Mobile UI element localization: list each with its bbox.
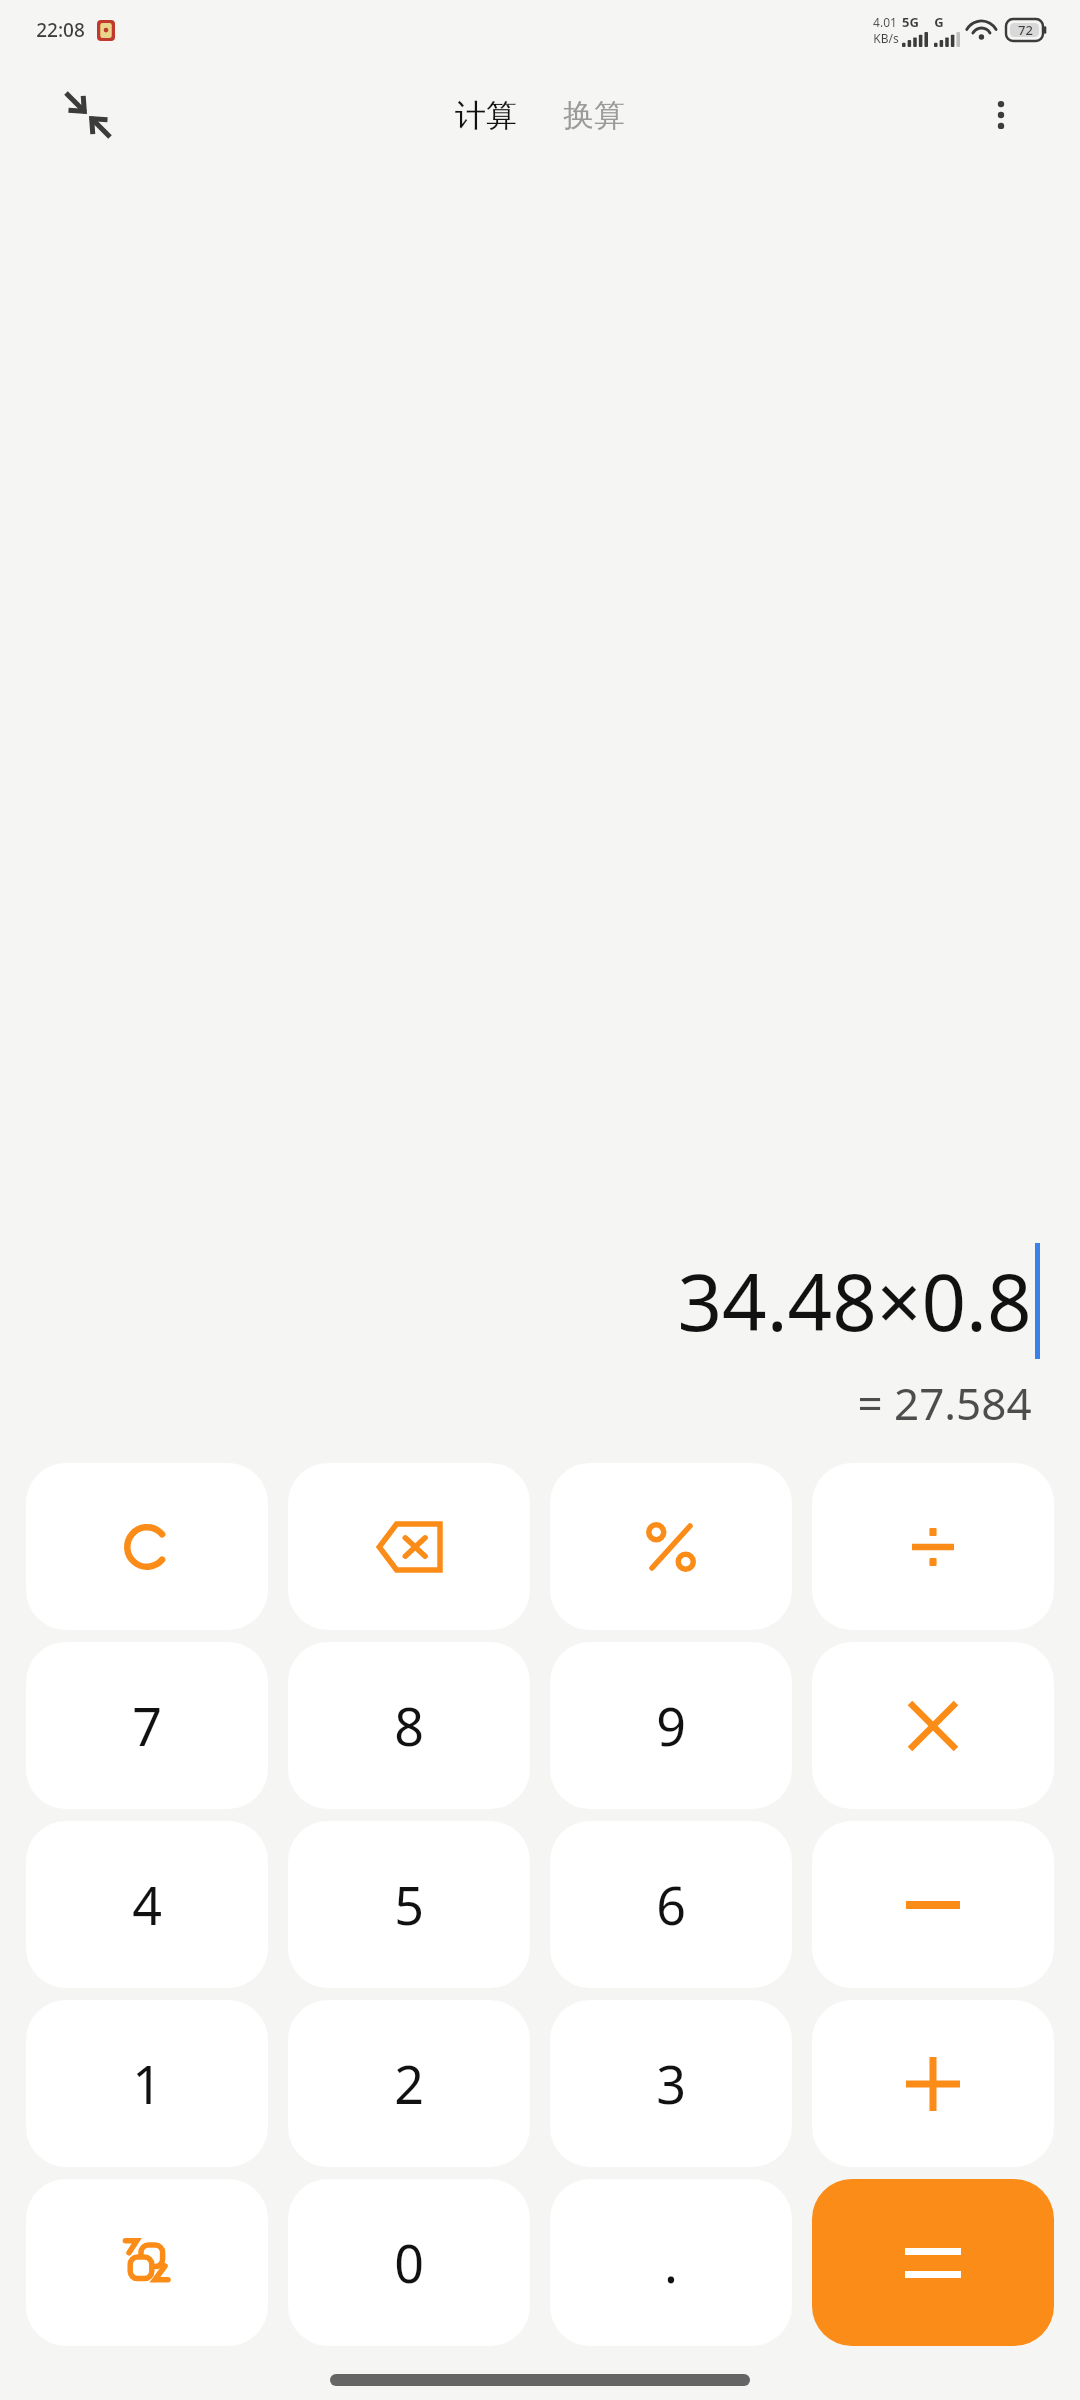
- button[interactable]: Scientific mode: [26, 2179, 268, 2346]
- staticText: 计算: [455, 96, 517, 135]
- button[interactable]: [550, 1463, 792, 1630]
- staticText: 5: [394, 1869, 424, 1940]
- staticText: 6: [656, 1869, 686, 1940]
- staticText: 4.01: [873, 14, 897, 30]
- button[interactable]: More options: [966, 80, 1036, 150]
- button[interactable]: 7: [26, 1642, 268, 1809]
- staticText: 7: [132, 1690, 162, 1761]
- staticText: 3: [656, 2048, 686, 2119]
- staticText: 换算: [563, 96, 625, 135]
- staticText: 2: [394, 2048, 424, 2119]
- button[interactable]: 1: [26, 2000, 268, 2167]
- button[interactable]: 4: [26, 1821, 268, 1988]
- staticText: 0: [394, 2227, 424, 2298]
- staticText: 22:08: [36, 17, 85, 43]
- staticText: 4: [132, 1869, 162, 1940]
- staticText: KB/s: [873, 30, 899, 46]
- button[interactable]: .: [550, 2179, 792, 2346]
- button[interactable]: 9: [550, 1642, 792, 1809]
- button[interactable]: [812, 1642, 1054, 1809]
- button[interactable]: [288, 1463, 530, 1630]
- button[interactable]: 2: [288, 2000, 530, 2167]
- staticText: 5G: [902, 13, 919, 31]
- button[interactable]: [26, 1463, 268, 1630]
- button[interactable]: [812, 1821, 1054, 1988]
- button[interactable]: 6: [550, 1821, 792, 1988]
- button[interactable]: 0: [288, 2179, 530, 2346]
- button[interactable]: Collapse: [50, 77, 126, 153]
- button[interactable]: 3: [550, 2000, 792, 2167]
- staticText: 1: [132, 2048, 162, 2119]
- button[interactable]: 8: [288, 1642, 530, 1809]
- staticText: = 27.584: [857, 1373, 1032, 1433]
- staticText: .: [664, 2227, 678, 2298]
- button[interactable]: 换算: [555, 90, 633, 141]
- staticText: 9: [656, 1690, 686, 1761]
- button[interactable]: [812, 1463, 1054, 1630]
- button[interactable]: 5: [288, 1821, 530, 1988]
- staticText: G: [934, 13, 944, 31]
- staticText: 8: [394, 1690, 424, 1761]
- staticText: 72: [1018, 21, 1033, 39]
- button[interactable]: Equals: [812, 2179, 1054, 2346]
- staticText: 34.48×0.8: [677, 1248, 1032, 1354]
- button[interactable]: 计算: [447, 90, 525, 141]
- button[interactable]: [812, 2000, 1054, 2167]
